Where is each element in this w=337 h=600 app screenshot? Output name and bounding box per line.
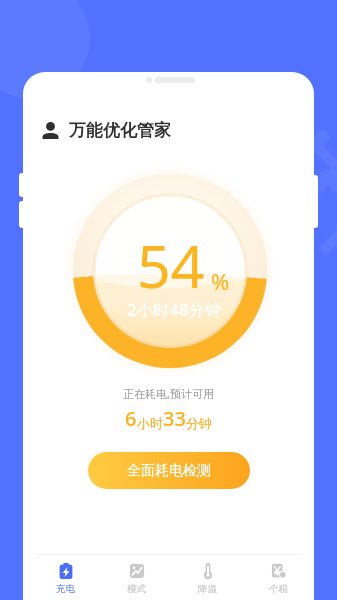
staticText: 全面耗电检测 <box>127 462 211 480</box>
staticText: 模式 <box>127 583 146 595</box>
button[interactable]: 模式 <box>101 561 172 595</box>
staticText: 2小时48分钟 <box>127 298 222 321</box>
button[interactable]: 个税 <box>243 561 314 595</box>
staticText: 正在耗电,预计可用 <box>123 386 214 401</box>
button[interactable]: 降温 <box>172 561 243 595</box>
staticText: 充电 <box>56 583 75 595</box>
staticText: 降温 <box>198 583 217 595</box>
staticText: 分钟 <box>186 415 212 431</box>
staticText: 个税 <box>269 583 288 595</box>
staticText: 万能优化管家 <box>69 120 171 141</box>
button[interactable]: 全面耗电检测 <box>88 452 250 489</box>
staticText: 33 <box>163 405 186 432</box>
staticText: 小时 <box>137 415 163 431</box>
button[interactable]: 充电 <box>30 561 101 595</box>
staticText: % <box>211 266 230 296</box>
staticText: 6 <box>125 405 137 432</box>
staticText: 54 <box>137 225 205 305</box>
